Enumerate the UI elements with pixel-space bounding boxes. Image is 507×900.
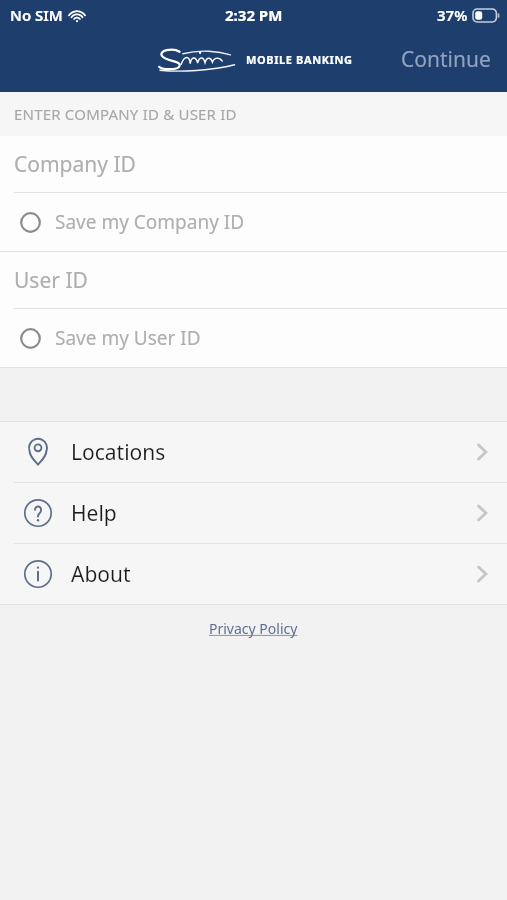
button[interactable]: Save my Company ID [0,193,507,251]
staticText: About [71,560,131,589]
staticText: Privacy Policy [209,619,298,638]
button[interactable]: Privacy Policy [203,613,304,644]
staticText: User ID [14,266,88,295]
staticText: 2:32 PM [225,5,283,25]
button[interactable]: Continue [385,37,507,82]
button[interactable]: Save my User ID [0,309,507,367]
staticText: Company ID [14,150,136,179]
staticText: Locations [71,438,166,467]
button[interactable]: About [0,544,507,604]
button[interactable]: User ID [0,252,507,308]
staticText: 37% [437,5,468,25]
staticText: MOBILE BANKING [246,52,353,67]
staticText: ENTER COMPANY ID & USER ID [14,104,237,124]
staticText: Continue [401,45,491,74]
staticText: No SIM [10,5,63,25]
button[interactable]: Help [0,483,507,543]
staticText: Save my User ID [55,325,201,351]
button[interactable]: Company ID [0,136,507,192]
button[interactable]: Locations [0,422,507,482]
staticText: Save my Company ID [55,209,245,235]
staticText: Help [71,499,117,528]
